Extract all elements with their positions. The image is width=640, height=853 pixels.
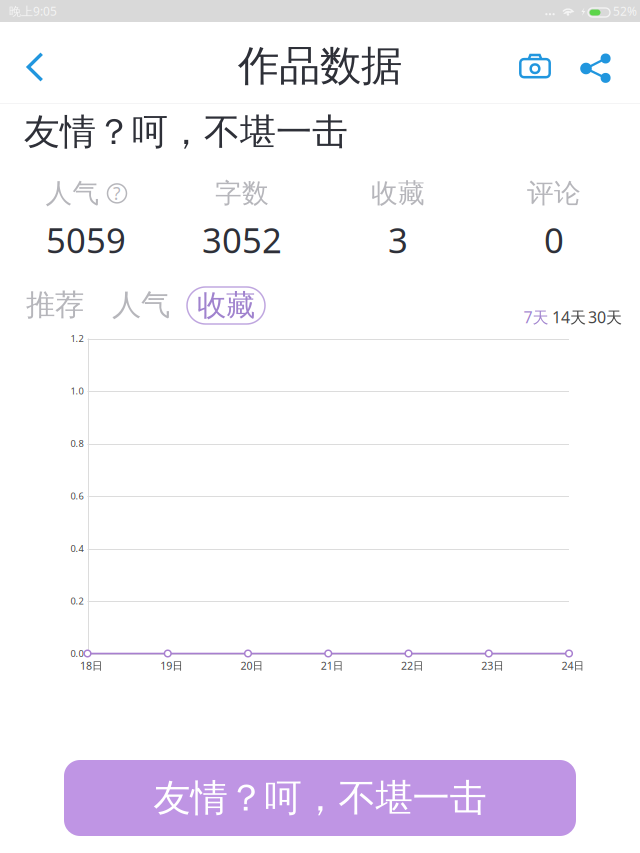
staticText: 0	[544, 217, 564, 263]
staticText: 收藏	[197, 287, 255, 323]
staticText: 23日	[481, 658, 504, 673]
staticText: 字数	[215, 177, 269, 210]
staticText: 作品数据	[238, 41, 402, 91]
button[interactable]: Camera	[504, 22, 566, 100]
staticText: 友情？呵，不堪一击	[153, 775, 486, 821]
staticText: 22日	[401, 658, 424, 673]
button[interactable]: 30天	[587, 307, 623, 327]
staticText: 3	[388, 217, 408, 263]
staticText: 友情？呵，不堪一击	[24, 110, 348, 154]
staticText: 30天	[588, 306, 622, 328]
staticText: 收藏	[371, 177, 425, 210]
button[interactable]: 收藏	[187, 287, 265, 324]
staticText: 评论	[527, 177, 581, 210]
button[interactable]: 友情？呵，不堪一击	[64, 760, 576, 836]
button[interactable]: 人气	[106, 285, 176, 325]
button[interactable]: 7天	[521, 307, 551, 327]
staticText: 5059	[46, 217, 126, 263]
staticText: ?	[113, 182, 121, 205]
staticText: 0.0	[70, 647, 83, 660]
button[interactable]: Back	[0, 22, 66, 100]
staticText: 18日	[80, 658, 103, 673]
staticText: 0.6	[70, 490, 83, 502]
staticText: 19日	[160, 658, 183, 673]
staticText: 52%	[613, 3, 637, 19]
staticText: 1.2	[70, 332, 83, 345]
staticText: 0.2	[70, 595, 83, 607]
button[interactable]: 14天	[551, 307, 587, 327]
button[interactable]: 推荐	[20, 285, 90, 325]
staticText: 3052	[202, 217, 282, 263]
staticText: 0.8	[70, 437, 83, 450]
button[interactable]: Share	[564, 22, 626, 100]
staticText: 0.4	[70, 542, 83, 555]
staticText: 人气	[45, 177, 99, 210]
staticText: 20日	[240, 658, 263, 673]
staticText: 24日	[561, 658, 584, 673]
staticText: 14天	[552, 306, 586, 328]
staticText: 21日	[321, 658, 344, 673]
staticText: 7天	[523, 306, 548, 328]
staticText: 推荐	[26, 287, 84, 323]
staticText: 人气	[112, 287, 170, 323]
staticText: 晚上9:05	[9, 3, 57, 19]
staticText: 1.0	[70, 385, 83, 397]
